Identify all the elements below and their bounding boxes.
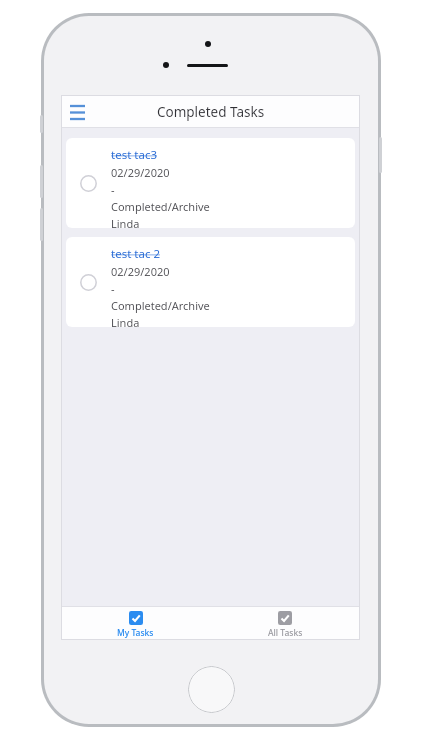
staticText: Completed Tasks	[157, 103, 265, 121]
button[interactable]: Open navigation menu	[64, 99, 90, 125]
staticText: test tac 2	[111, 246, 160, 262]
staticText: Linda	[111, 315, 140, 327]
staticText: All Tasks	[268, 627, 303, 639]
button[interactable]: All Tasks	[210, 607, 360, 639]
button[interactable]: test tac 2	[66, 237, 355, 327]
staticText: -	[111, 281, 115, 296]
staticText: test tac3	[111, 147, 157, 163]
staticText: -	[111, 182, 115, 197]
button[interactable]: test tac3	[66, 138, 355, 228]
staticText: My Tasks	[117, 627, 154, 639]
staticText: Completed/Archive	[111, 298, 210, 313]
staticText: Linda	[111, 216, 140, 228]
staticText: Completed/Archive	[111, 199, 210, 214]
staticText: 02/29/2020	[111, 264, 170, 279]
staticText: 02/29/2020	[111, 165, 170, 180]
button[interactable]: My Tasks	[61, 607, 210, 639]
